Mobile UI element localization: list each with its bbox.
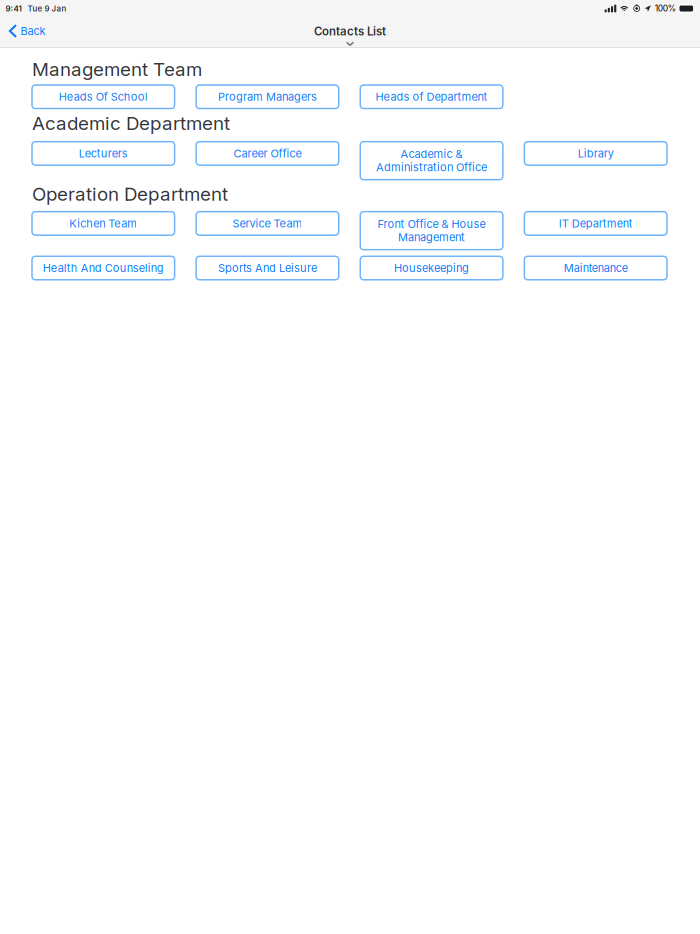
button[interactable]: Heads Of School — [32, 85, 175, 108]
staticText: Career Office — [233, 147, 301, 160]
button[interactable]: Library — [524, 142, 667, 165]
staticText: Heads of Department — [376, 90, 488, 103]
staticText: Front Office & House — [378, 217, 486, 231]
staticText: Health And Counseling — [43, 261, 164, 275]
staticText: Administration Office — [376, 161, 487, 174]
button[interactable]: Maintenance — [524, 256, 667, 280]
staticText: Academic Department — [32, 112, 230, 134]
button[interactable]: Back — [0, 16, 55, 46]
staticText: Lecturers — [79, 147, 128, 160]
staticText: Heads Of School — [59, 90, 148, 103]
button[interactable]: Lecturers — [32, 142, 175, 165]
button[interactable]: Housekeeping — [360, 256, 503, 280]
staticText: Sports And Leisure — [218, 261, 317, 275]
button[interactable]: Career Office — [196, 142, 339, 165]
staticText: Management — [398, 231, 465, 244]
staticText: Program Managers — [218, 90, 317, 103]
button[interactable]: IT Department — [524, 212, 667, 235]
staticText: 9:41 — [5, 4, 21, 13]
staticText: Maintenance — [564, 261, 628, 275]
staticText: Kichen Team — [69, 217, 137, 230]
button[interactable]: Program Managers — [196, 85, 339, 108]
staticText: Tue 9 Jan — [27, 4, 66, 13]
button[interactable]: Health And Counseling — [32, 256, 175, 280]
staticText: Housekeeping — [394, 261, 469, 275]
button[interactable]: Sports And Leisure — [196, 256, 339, 280]
button[interactable]: Service Team — [196, 212, 339, 235]
button[interactable]: Heads of Department — [360, 85, 503, 108]
staticText: Contacts List — [314, 24, 386, 38]
staticText: Library — [578, 147, 614, 160]
button[interactable]: Academic & — [360, 142, 503, 180]
staticText: Service Team — [232, 217, 302, 230]
staticText: 100% — [655, 3, 676, 14]
staticText: Back — [20, 24, 45, 38]
staticText: IT Department — [559, 217, 633, 230]
button[interactable]: Front Office & House — [360, 212, 503, 250]
staticText: Operation Department — [32, 183, 228, 205]
staticText: Management Team — [32, 58, 202, 80]
staticText: Academic & — [401, 147, 463, 161]
button[interactable]: Kichen Team — [32, 212, 175, 235]
